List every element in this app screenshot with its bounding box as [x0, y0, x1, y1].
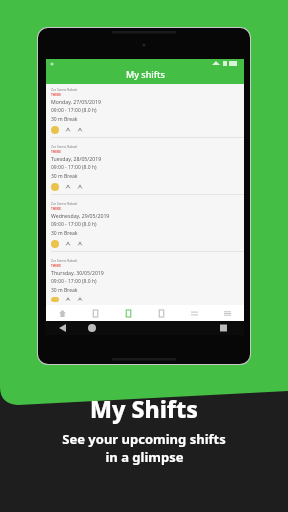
- staticText: See your upcoming shifts: [62, 430, 226, 448]
- staticText: Wednesday, 29/05/2019: [51, 212, 110, 219]
- staticText: THEKE: [51, 150, 61, 154]
- button[interactable]: More: [211, 305, 244, 321]
- button[interactable]: My shifts: [112, 305, 145, 321]
- staticText: 09:00 - 17:00 (8.0 h): [51, 164, 97, 171]
- staticText: Zur Sonne Rabatt: [51, 145, 78, 149]
- staticText: My Shifts: [90, 393, 198, 424]
- button[interactable]: Zur Sonne Rabatt: [46, 198, 244, 255]
- button[interactable]: Zur Sonne Rabatt: [46, 141, 244, 198]
- staticText: My shifts: [126, 68, 165, 80]
- staticText: 30 m Break: [51, 116, 78, 123]
- button[interactable]: Reports: [145, 305, 178, 321]
- staticText: THEKE: [51, 207, 61, 211]
- staticText: THEKE: [51, 93, 61, 97]
- button[interactable]: Zur Sonne Rabatt: [46, 255, 244, 305]
- staticText: Zur Sonne Rabatt: [51, 202, 78, 206]
- staticText: 09:00 - 17:00 (8.0 h): [51, 221, 97, 228]
- staticText: Zur Sonne Rabatt: [51, 88, 78, 92]
- staticText: Thursday, 30/05/2019: [51, 269, 104, 276]
- button[interactable]: Exchange: [178, 305, 211, 321]
- staticText: 09:00 - 17:00 (8.0 h): [51, 107, 97, 114]
- button[interactable]: Zur Sonne Rabatt: [46, 84, 244, 141]
- staticText: 30 m Break: [51, 287, 78, 294]
- staticText: 30 m Break: [51, 230, 78, 237]
- button[interactable]: Home: [46, 305, 79, 321]
- staticText: 30 m Break: [51, 173, 78, 180]
- button[interactable]: Shifts: [79, 305, 112, 321]
- staticText: 09:00 - 17:00 (8.0 h): [51, 278, 97, 285]
- staticText: Monday, 27/05/2019: [51, 98, 101, 105]
- staticText: THEKE: [51, 264, 61, 268]
- staticText: Tuesday, 28/05/2019: [51, 155, 102, 162]
- staticText: in a glimpse: [105, 448, 184, 466]
- staticText: Zur Sonne Rabatt: [51, 259, 78, 263]
